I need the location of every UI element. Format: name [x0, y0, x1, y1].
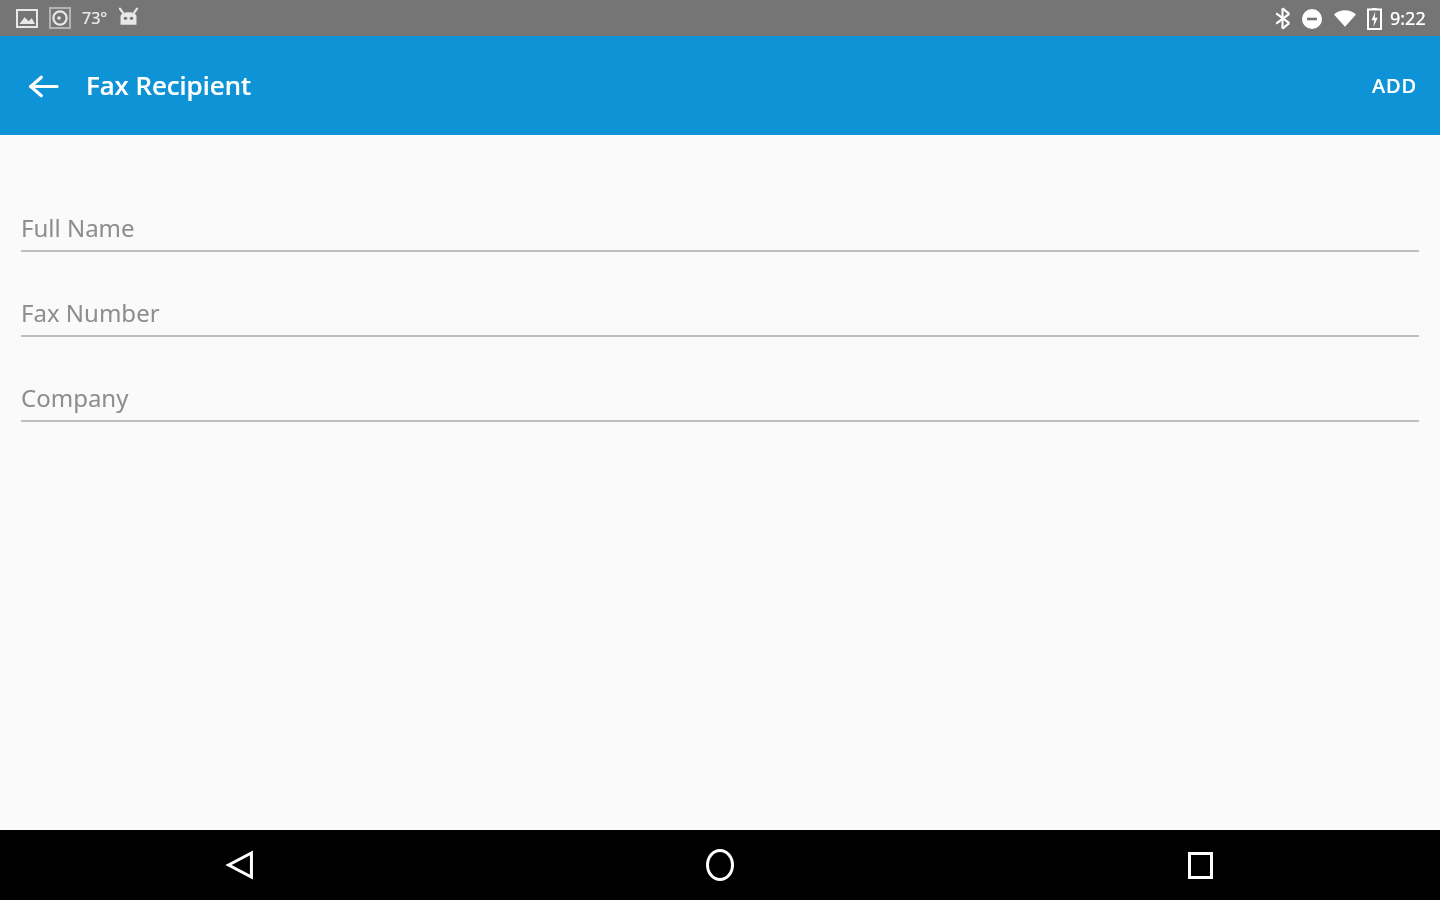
button[interactable]: Home: [480, 830, 960, 900]
staticText: Full Name: [21, 211, 135, 244]
button[interactable]: Back: [19, 62, 67, 110]
staticText: Company: [21, 381, 129, 414]
staticText: Fax Number: [21, 296, 160, 329]
button[interactable]: Fax Number: [21, 275, 1419, 337]
staticText: Fax Recipient: [86, 67, 251, 102]
button[interactable]: Recent apps: [960, 830, 1440, 900]
staticText: ADD: [1372, 72, 1418, 99]
button[interactable]: ADD: [1350, 54, 1440, 117]
button[interactable]: Company: [21, 360, 1419, 422]
staticText: 9:22: [1390, 6, 1426, 31]
staticText: 73°: [82, 7, 108, 29]
button[interactable]: Back: [0, 830, 480, 900]
button[interactable]: Full Name: [21, 190, 1419, 252]
